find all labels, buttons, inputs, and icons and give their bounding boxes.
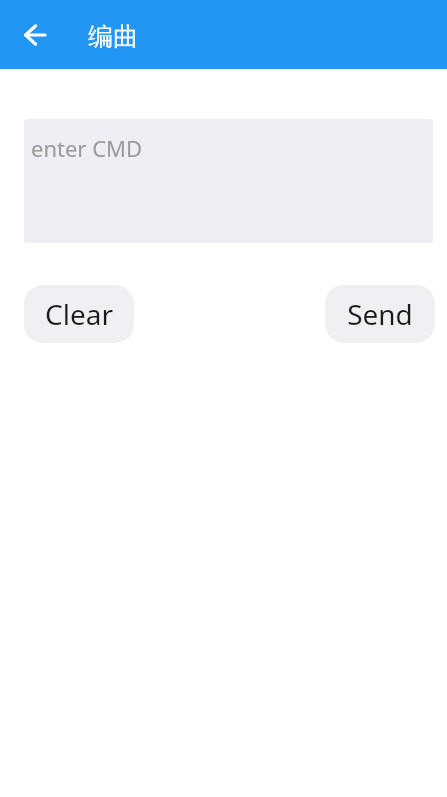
button[interactable]: Command input field [24,119,433,243]
button[interactable]: Send [325,285,435,343]
button[interactable]: Clear [24,285,134,343]
staticText: Send [347,295,413,333]
staticText: 编曲 [88,21,138,52]
button[interactable]: Back [12,12,57,57]
staticText: enter CMD [31,133,143,163]
staticText: Clear [45,295,113,333]
